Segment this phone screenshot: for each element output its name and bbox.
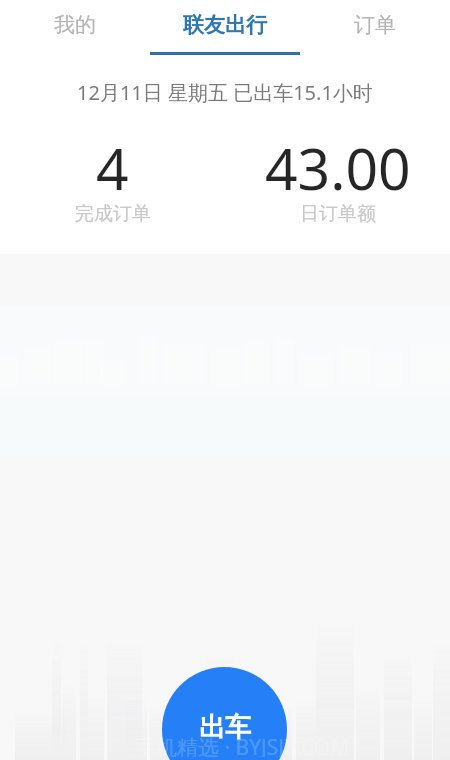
button[interactable]: 43.00 <box>225 129 450 207</box>
button[interactable]: 我的 <box>0 0 150 56</box>
staticText: 4 <box>96 129 129 207</box>
staticText: 出车 <box>199 711 251 744</box>
button[interactable]: 订单 <box>300 0 450 56</box>
staticText: 12月11日 星期五 已出车15.1小时 <box>77 79 373 106</box>
staticText: 联友出行 <box>183 12 267 38</box>
staticText: 手机精选 · BYJSJX.COM <box>135 733 350 757</box>
staticText: 43.00 <box>265 129 411 207</box>
button[interactable]: 出车 <box>162 667 287 760</box>
button[interactable]: 4 <box>0 129 225 207</box>
staticText: 订单 <box>354 12 396 38</box>
staticText: 完成订单 <box>75 202 151 226</box>
staticText: 我的 <box>54 12 96 38</box>
staticText: 日订单额 <box>300 202 376 226</box>
button[interactable]: 联友出行 <box>150 0 300 56</box>
